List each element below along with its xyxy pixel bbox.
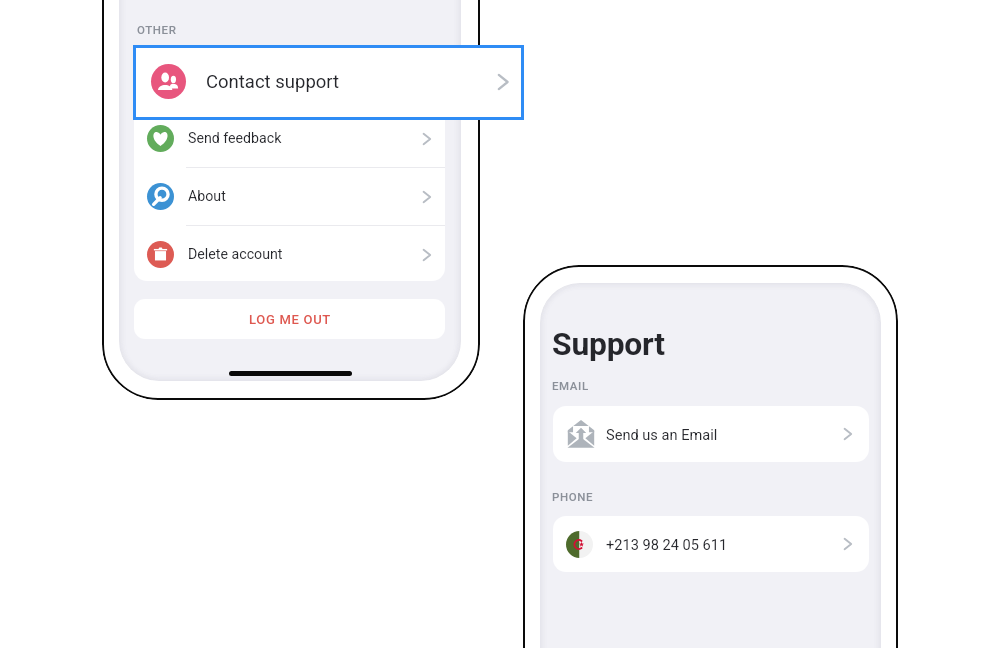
staticText: Support [552, 325, 665, 362]
staticText: EMAIL [552, 379, 589, 392]
staticText: About [188, 188, 226, 205]
button[interactable]: Send feedback [134, 110, 445, 167]
staticText: PHONE [552, 490, 594, 503]
button[interactable]: LOG ME OUT [134, 299, 445, 339]
staticText: +213 98 24 05 611 [606, 536, 728, 553]
staticText: Contact support [206, 71, 340, 93]
button[interactable]: Delete account [134, 226, 445, 281]
staticText: Send us an Email [606, 426, 718, 443]
staticText: Send feedback [188, 130, 282, 147]
button[interactable]: +213 98 24 05 611 [553, 516, 869, 572]
staticText: Delete account [188, 246, 283, 263]
button[interactable]: Contact support [133, 45, 524, 120]
button[interactable]: About [134, 168, 445, 225]
button[interactable]: Send us an Email [553, 406, 869, 462]
staticText: LOG ME OUT [249, 312, 331, 327]
staticText: OTHER [137, 23, 177, 36]
